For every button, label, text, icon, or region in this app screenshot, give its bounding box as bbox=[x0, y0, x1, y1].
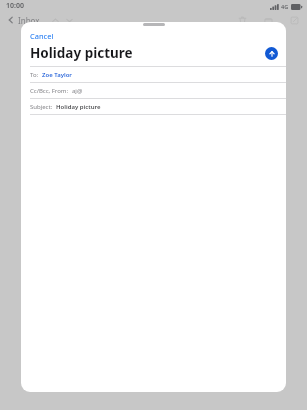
button[interactable]: Cc/Bcc, From: bbox=[21, 83, 286, 98]
button[interactable]: Delete bbox=[234, 12, 250, 28]
staticText: 10:00 bbox=[6, 1, 24, 11]
button[interactable]: Send bbox=[265, 47, 278, 60]
staticText: 4G bbox=[281, 3, 289, 10]
button[interactable]: Previous message bbox=[48, 13, 62, 27]
staticText: Holiday picture bbox=[30, 44, 133, 62]
button[interactable]: Back to Inbox bbox=[4, 13, 18, 27]
button[interactable]: Next message bbox=[62, 13, 76, 27]
staticText: Subject: bbox=[30, 103, 53, 111]
staticText: Holiday picture bbox=[56, 103, 101, 111]
button[interactable]: To: bbox=[21, 67, 286, 82]
staticText: Cc/Bcc, From: bbox=[30, 87, 69, 95]
button[interactable]: Move to folder bbox=[260, 12, 276, 28]
button[interactable]: Subject: bbox=[21, 99, 286, 114]
staticText: aj@ bbox=[72, 87, 83, 95]
button[interactable]: Cancel bbox=[21, 29, 60, 42]
staticText: To: bbox=[30, 71, 39, 79]
staticText: Cancel bbox=[30, 31, 54, 40]
staticText: Zoe Taylor bbox=[42, 71, 72, 79]
staticText: Inbox bbox=[18, 15, 40, 26]
